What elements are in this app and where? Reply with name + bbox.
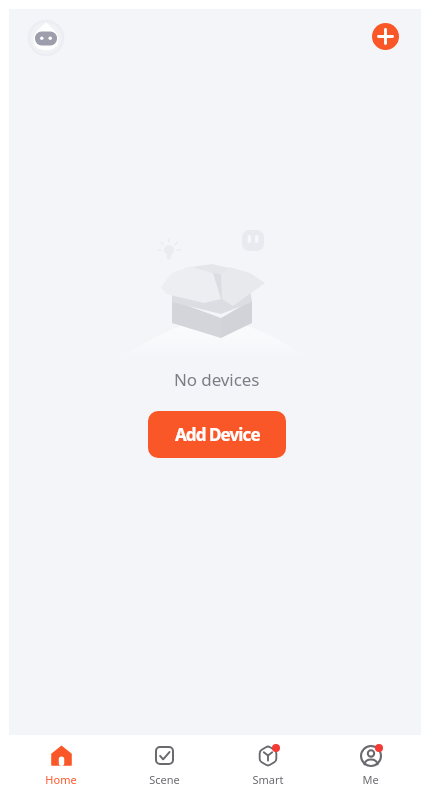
staticText: Home (45, 772, 77, 787)
button[interactable]: Smart (216, 735, 319, 798)
staticText: Smart (252, 772, 284, 787)
button[interactable]: Home (9, 735, 113, 798)
button[interactable]: Scene (113, 735, 216, 798)
staticText: Me (362, 772, 379, 787)
staticText: Scene (149, 772, 180, 787)
button[interactable]: Add device (372, 23, 399, 50)
staticText: No devices (174, 368, 260, 391)
button[interactable]: Select home (24, 16, 68, 60)
button[interactable]: Me (319, 735, 422, 798)
staticText: Add Device (175, 423, 260, 446)
button[interactable]: Add Device (148, 411, 286, 458)
